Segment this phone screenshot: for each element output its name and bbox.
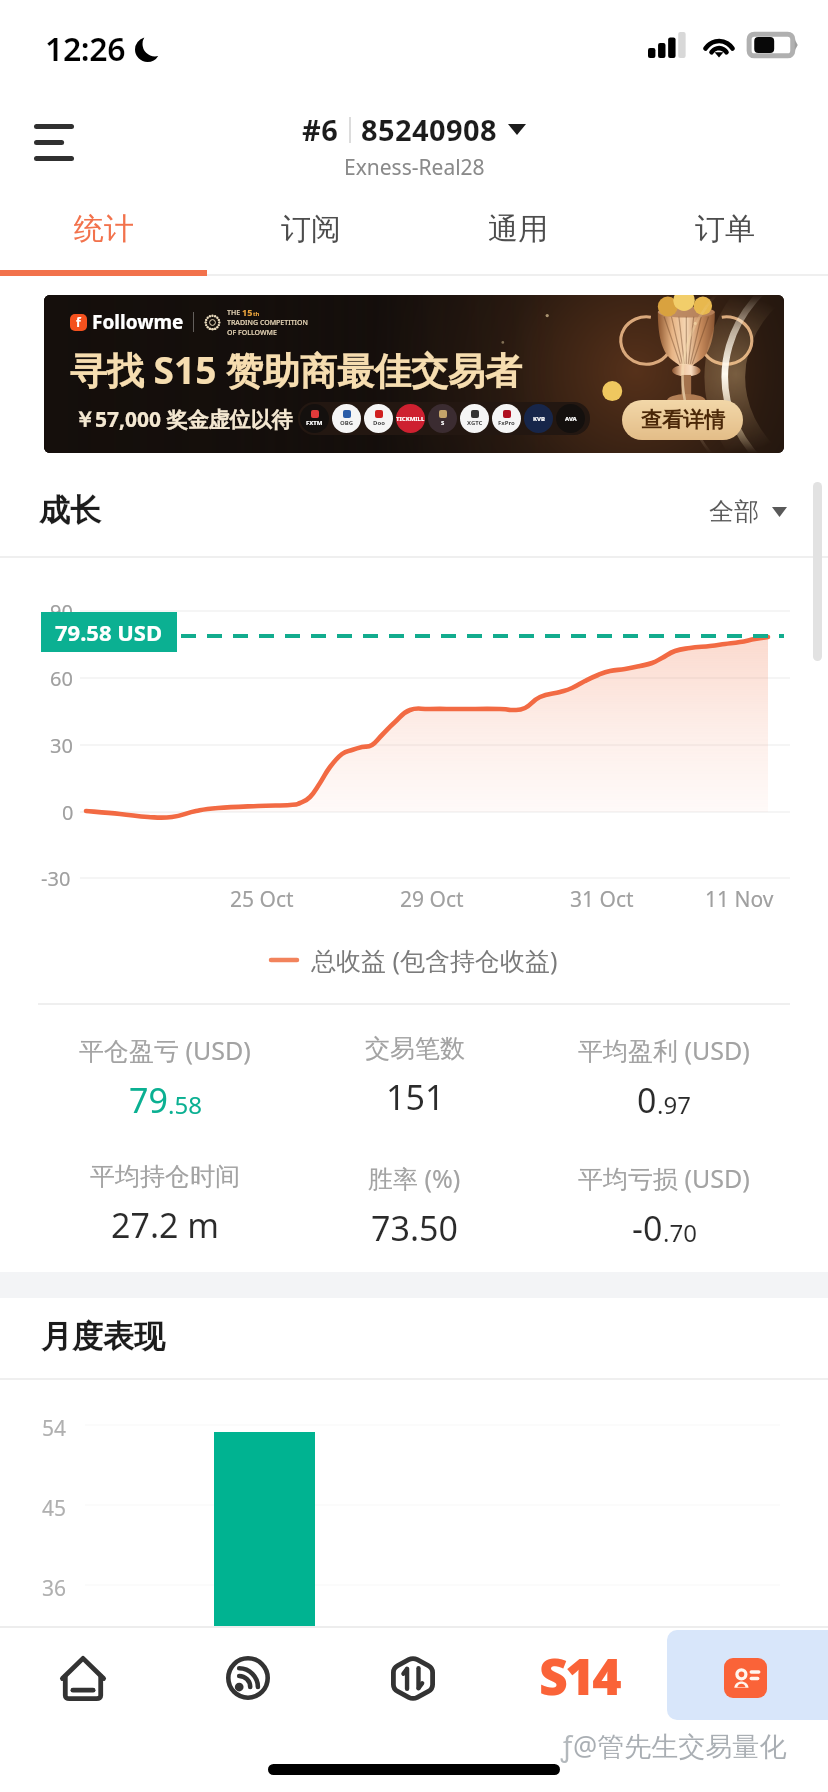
button[interactable]: S14 event <box>496 1626 662 1730</box>
button[interactable]: Trade <box>330 1626 496 1730</box>
staticText: 73.50 <box>371 1205 458 1251</box>
staticText: FXTM <box>306 419 323 427</box>
button[interactable]: 订单 <box>621 190 828 276</box>
staticText: Doo <box>373 419 385 427</box>
button[interactable]: Home <box>0 1626 165 1730</box>
staticText: 12:26 <box>45 27 126 71</box>
staticText: 平仓盈亏 (USD) <box>79 1033 251 1067</box>
staticText: -30 <box>41 865 71 892</box>
staticText: 0 <box>62 799 74 826</box>
staticText: th <box>253 310 260 318</box>
staticText: 0 <box>637 1077 657 1123</box>
staticText: #6 <box>302 110 339 149</box>
button[interactable]: Profile <box>662 1626 828 1730</box>
staticText: AVA <box>565 415 577 423</box>
staticText: 29 Oct <box>400 885 464 914</box>
staticText: 11 Nov <box>705 885 774 914</box>
staticText: @管先生交易量化 <box>573 1727 787 1764</box>
staticText: 90 <box>50 598 73 625</box>
staticText: 45 <box>42 1494 67 1523</box>
button[interactable]: 订阅 <box>207 190 414 276</box>
staticText: 79 <box>129 1077 168 1123</box>
staticText: 30 <box>50 732 73 759</box>
staticText: 订单 <box>695 210 755 248</box>
staticText: 成长 <box>39 491 101 530</box>
staticText: 月度表现 <box>41 1317 165 1356</box>
staticText: 统计 <box>74 210 134 248</box>
staticText: -0 <box>632 1205 663 1251</box>
staticText: 全部 <box>709 496 759 527</box>
staticText: THE <box>227 308 242 318</box>
staticText: .58 <box>168 1088 202 1121</box>
staticText: 查看详情 <box>641 407 725 433</box>
staticText: 通用 <box>488 210 548 248</box>
staticText: 85240908 <box>361 110 497 149</box>
staticText: 151 <box>386 1074 445 1120</box>
staticText: .70 <box>663 1216 697 1249</box>
staticText: FxPro <box>498 419 515 427</box>
staticText: .97 <box>657 1088 691 1121</box>
staticText: Followme <box>92 309 184 335</box>
staticText: 60 <box>50 665 73 692</box>
staticText: 总收益 (包含持仓收益) <box>311 943 558 977</box>
button[interactable]: f <box>44 295 784 453</box>
staticText: 31 Oct <box>570 885 634 914</box>
button[interactable]: 统计 <box>0 190 207 276</box>
staticText: 27.2 m <box>111 1202 220 1248</box>
staticText: 寻找 S15 赞助商最佳交易者 <box>70 344 522 395</box>
staticText: 平均持仓时间 <box>90 1161 240 1192</box>
staticText: 36 <box>42 1574 67 1603</box>
staticText: 15 <box>242 306 253 318</box>
staticText: 订阅 <box>281 210 341 248</box>
staticText: S14 <box>539 1642 619 1710</box>
button[interactable]: 全部 <box>709 496 787 527</box>
staticText: KVB <box>533 415 545 423</box>
button[interactable]: 查看详情 <box>622 400 743 440</box>
button[interactable]: Feed <box>165 1626 330 1730</box>
staticText: OF FOLLOWME <box>227 328 277 338</box>
staticText: ƒ <box>561 1727 573 1764</box>
staticText: 54 <box>42 1414 67 1443</box>
button[interactable]: Menu <box>14 106 94 178</box>
staticText: f <box>76 314 81 330</box>
staticText: 交易笔数 <box>365 1033 465 1064</box>
staticText: 胜率 (%) <box>368 1161 461 1195</box>
staticText: ￥57,000 奖金虚位以待 <box>74 405 293 434</box>
button[interactable]: 通用 <box>414 190 621 276</box>
staticText: OBG <box>340 419 354 427</box>
staticText: TRADING COMPETITION <box>227 318 309 328</box>
staticText: 79.58 USD <box>55 617 163 647</box>
staticText: TICKMILL <box>396 415 425 423</box>
staticText: Exness-Real28 <box>344 153 485 182</box>
staticText: 平均盈利 (USD) <box>578 1033 750 1067</box>
staticText: 平均亏损 (USD) <box>578 1161 750 1195</box>
staticText: 25 Oct <box>230 885 294 914</box>
staticText: XGTC <box>467 419 483 427</box>
staticText: S <box>441 419 445 427</box>
